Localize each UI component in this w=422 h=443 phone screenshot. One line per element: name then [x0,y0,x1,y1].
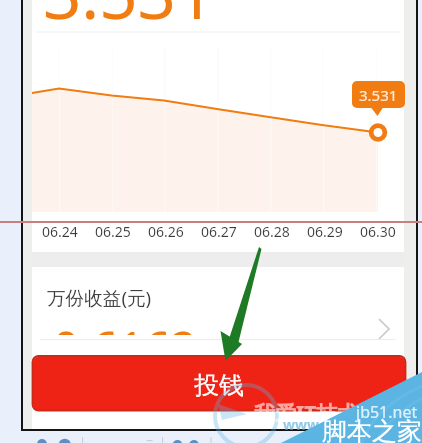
staticText: jb51.net [356,401,418,423]
button[interactable]: More details [374,316,398,340]
staticText: 06.25 [95,222,131,241]
staticText: 06.28 [254,222,290,241]
staticText: 06.30 [360,222,396,241]
staticText: 3.531 [359,85,398,105]
staticText: 万份收益(元) [47,285,152,310]
button[interactable]: 投钱 [33,357,405,410]
staticText: 06.29 [307,222,343,241]
staticText: 06.26 [148,222,184,241]
staticText: www. [283,415,323,434]
staticText: 脚本之家 [322,416,422,443]
staticText: 06.27 [201,222,237,241]
staticText: 06.24 [42,222,78,241]
staticText: 3.531 [43,0,215,38]
staticText: 我爱IT技术 [254,399,359,428]
staticText: 0.6162 [53,320,197,335]
staticText: 投钱 [194,370,244,401]
